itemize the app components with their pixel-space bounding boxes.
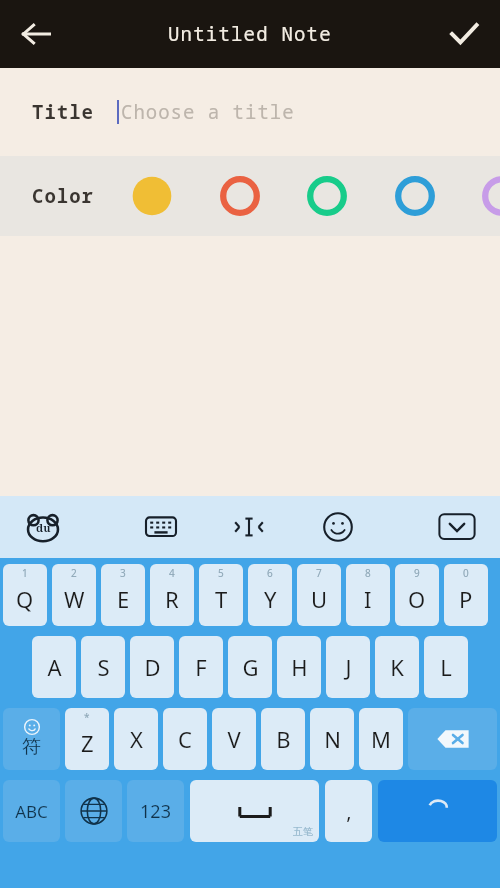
button[interactable]: Save xyxy=(436,6,492,62)
staticText: H xyxy=(291,652,308,682)
button[interactable]: 4 xyxy=(150,564,194,626)
button[interactable]: Color option 3 xyxy=(301,170,353,222)
staticText: 9 xyxy=(414,566,420,580)
button[interactable]: ABC xyxy=(3,780,60,842)
button[interactable]: 5 xyxy=(199,564,243,626)
button[interactable]: Color option 5 xyxy=(476,170,500,222)
staticText: G xyxy=(242,652,259,682)
button[interactable]: , xyxy=(325,780,372,842)
staticText: Title xyxy=(32,99,95,125)
staticText: 5 xyxy=(218,566,224,580)
staticText: Q xyxy=(16,584,34,614)
staticText: Z xyxy=(81,728,94,758)
staticText: F xyxy=(195,652,207,682)
staticText: R xyxy=(165,584,179,614)
button[interactable]: K xyxy=(375,636,419,698)
staticText: 7 xyxy=(316,566,322,580)
staticText: Color xyxy=(32,183,95,209)
staticText: C xyxy=(178,724,192,754)
staticText: E xyxy=(117,584,130,614)
button[interactable]: A xyxy=(32,636,76,698)
button[interactable]: Title xyxy=(0,68,500,156)
button[interactable]: * xyxy=(65,708,109,770)
button[interactable]: Color option 1 xyxy=(126,170,178,222)
button[interactable]: F xyxy=(179,636,223,698)
button[interactable]: Back xyxy=(8,6,64,62)
button[interactable]: Move cursor xyxy=(222,500,276,554)
button[interactable]: Baidu input xyxy=(16,500,70,554)
staticText: 6 xyxy=(267,566,273,580)
staticText: A xyxy=(47,652,62,682)
staticText: du xyxy=(36,520,51,535)
button[interactable]: S xyxy=(81,636,125,698)
button[interactable]: Backspace xyxy=(408,708,497,770)
staticText: U xyxy=(311,584,328,614)
staticText: T xyxy=(215,584,228,614)
button[interactable]: Emoji xyxy=(311,500,365,554)
staticText: Untitled Note xyxy=(168,21,332,47)
staticText: X xyxy=(130,724,143,754)
staticText: I xyxy=(364,584,372,614)
button[interactable]: 2 xyxy=(52,564,96,626)
button[interactable]: Switch language xyxy=(65,780,122,842)
staticText: 符 xyxy=(22,735,41,759)
button[interactable]: 6 xyxy=(248,564,292,626)
button[interactable]: 0 xyxy=(444,564,488,626)
button[interactable]: C xyxy=(163,708,207,770)
button[interactable]: J xyxy=(326,636,370,698)
staticText: N xyxy=(324,724,341,754)
staticText: Y xyxy=(264,584,277,614)
button[interactable]: D xyxy=(130,636,174,698)
button[interactable]: M xyxy=(359,708,403,770)
staticText: K xyxy=(390,652,404,682)
button[interactable]: Color option 4 xyxy=(389,170,441,222)
staticText: O xyxy=(408,584,426,614)
button[interactable]: H xyxy=(277,636,321,698)
button[interactable]: Space xyxy=(190,780,319,842)
button[interactable]: N xyxy=(310,708,354,770)
button[interactable]: 9 xyxy=(395,564,439,626)
staticText: J xyxy=(345,652,352,682)
button[interactable]: 123 xyxy=(127,780,184,842)
button[interactable]: V xyxy=(212,708,256,770)
staticText: V xyxy=(227,724,241,754)
staticText: 0 xyxy=(463,566,469,580)
staticText: W xyxy=(64,584,85,614)
button[interactable]: 3 xyxy=(101,564,145,626)
staticText: ABC xyxy=(15,800,48,823)
button[interactable]: Enter xyxy=(378,780,497,842)
staticText: 123 xyxy=(140,799,171,824)
staticText: 1 xyxy=(22,566,28,580)
staticText: L xyxy=(440,652,452,682)
button[interactable]: L xyxy=(424,636,468,698)
staticText: S xyxy=(97,652,110,682)
staticText: 3 xyxy=(120,566,126,580)
staticText: P xyxy=(459,584,473,614)
staticText: 五笔 xyxy=(293,825,313,838)
button[interactable]: G xyxy=(228,636,272,698)
staticText: * xyxy=(84,710,90,724)
button[interactable]: X xyxy=(114,708,158,770)
button[interactable]: Hide keyboard xyxy=(430,500,484,554)
staticText: 8 xyxy=(365,566,371,580)
staticText: 2 xyxy=(71,566,77,580)
staticText: M xyxy=(371,724,391,754)
staticText: 4 xyxy=(169,566,175,580)
staticText: B xyxy=(276,724,291,754)
button[interactable]: 7 xyxy=(297,564,341,626)
button[interactable]: 8 xyxy=(346,564,390,626)
button[interactable]: 1 xyxy=(3,564,47,626)
staticText: , xyxy=(346,798,352,825)
button[interactable]: Color option 2 xyxy=(214,170,266,222)
staticText: D xyxy=(144,652,161,682)
button[interactable]: B xyxy=(261,708,305,770)
staticText: Choose a title xyxy=(121,99,295,125)
button[interactable]: 符 xyxy=(3,708,60,770)
button[interactable]: Keyboard layout xyxy=(134,500,188,554)
